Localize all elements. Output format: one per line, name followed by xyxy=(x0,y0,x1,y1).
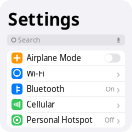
staticText: › xyxy=(116,82,120,96)
staticText: Wi-Fi xyxy=(26,68,44,79)
staticText: Off xyxy=(104,116,114,124)
button[interactable]: Bluetooth xyxy=(7,81,125,96)
staticText: Airplane Mode xyxy=(26,53,81,63)
button[interactable]: Search xyxy=(7,34,125,45)
staticText: Bluetooth xyxy=(26,84,64,94)
button[interactable]: Personal Hotspot xyxy=(7,112,125,127)
button[interactable]: Cellular xyxy=(7,97,125,112)
staticText: Personal Hotspot xyxy=(26,115,92,125)
button[interactable]: Wi-Fi xyxy=(7,66,125,81)
staticText: Cellular xyxy=(26,99,54,110)
staticText: Search xyxy=(18,36,40,44)
button[interactable]: Airplane Mode xyxy=(7,50,125,65)
staticText: Settings xyxy=(8,7,80,30)
staticText: › xyxy=(116,66,120,81)
staticText: › xyxy=(116,97,120,112)
staticText: › xyxy=(116,113,120,127)
staticText: On xyxy=(105,85,114,93)
